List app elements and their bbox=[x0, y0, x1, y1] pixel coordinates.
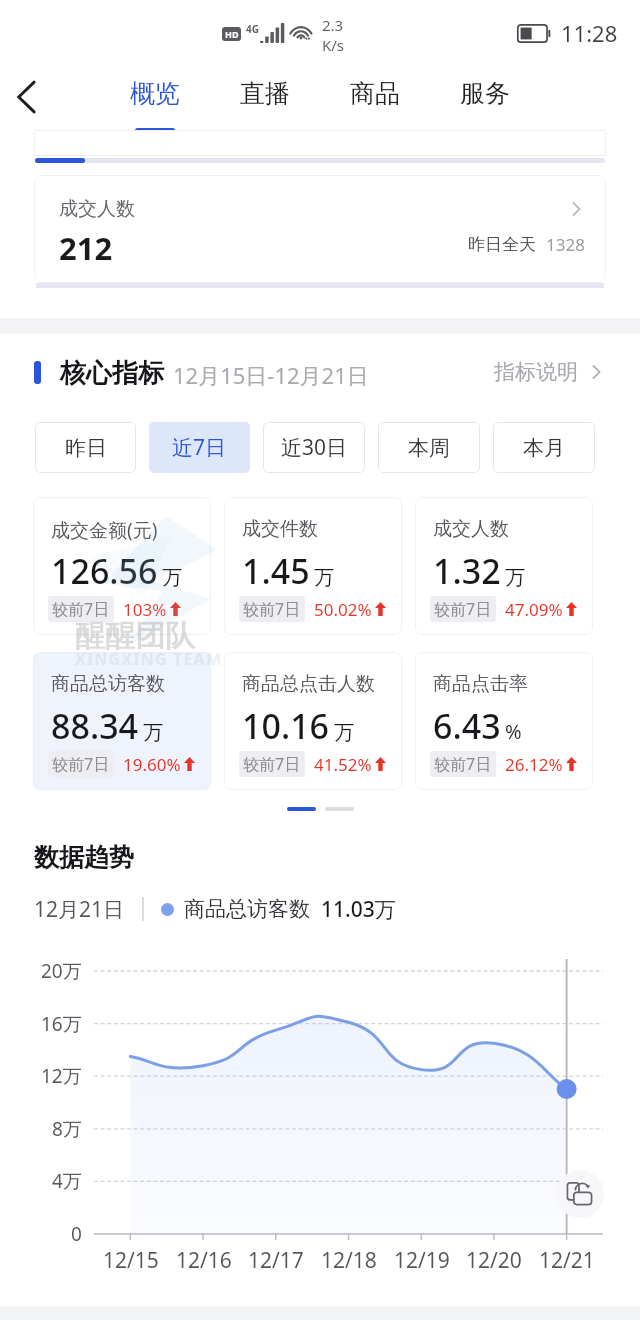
button[interactable]: Back bbox=[5, 73, 53, 121]
staticText: 10.16 bbox=[242, 703, 330, 749]
staticText: 较前7日 bbox=[434, 598, 492, 620]
button[interactable]: Rotate chart bbox=[556, 1170, 604, 1218]
button[interactable]: 近30日 bbox=[263, 422, 365, 473]
staticText: % bbox=[505, 718, 522, 745]
staticText: 万 bbox=[334, 720, 354, 745]
button[interactable]: 近7日 bbox=[149, 422, 250, 473]
staticText: 4万 bbox=[52, 1168, 82, 1194]
staticText: 直播 bbox=[240, 78, 290, 109]
staticText: 近30日 bbox=[281, 433, 348, 462]
button[interactable]: 商品总点击人数 bbox=[224, 652, 402, 790]
staticText: K/s bbox=[322, 35, 345, 55]
staticText: 指标说明 bbox=[494, 359, 578, 385]
staticText: 12/17 bbox=[248, 1246, 304, 1275]
staticText: 较前7日 bbox=[434, 753, 492, 775]
staticText: 本月 bbox=[523, 435, 565, 461]
staticText: 19.60% bbox=[123, 753, 181, 776]
staticText: 本周 bbox=[408, 435, 450, 461]
staticText: 12月21日 bbox=[34, 895, 125, 924]
button[interactable]: 成交金额(元) bbox=[33, 497, 211, 635]
staticText: 26.12% bbox=[505, 753, 563, 776]
staticText: 12/21 bbox=[539, 1246, 595, 1275]
button[interactable]: 直播 bbox=[227, 66, 303, 134]
staticText: 12/20 bbox=[466, 1246, 522, 1275]
staticText: 较前7日 bbox=[52, 598, 110, 620]
staticText: 12/18 bbox=[321, 1246, 377, 1275]
staticText: 11:28 bbox=[561, 18, 618, 48]
staticText: 8万 bbox=[52, 1116, 82, 1142]
staticText: 万 bbox=[505, 565, 525, 590]
button[interactable]: 昨日 bbox=[35, 422, 136, 473]
button[interactable]: 本月 bbox=[493, 422, 595, 473]
staticText: 12月15日-12月21日 bbox=[173, 360, 369, 390]
button[interactable]: 商品点击率 bbox=[415, 652, 593, 790]
staticText: 1328 bbox=[546, 233, 585, 256]
staticText: HD bbox=[225, 28, 239, 40]
staticText: 成交金额(元) bbox=[51, 517, 158, 543]
staticText: 成交人数 bbox=[59, 197, 135, 221]
staticText: 较前7日 bbox=[243, 753, 301, 775]
button[interactable]: 成交人数 bbox=[34, 175, 606, 283]
staticText: 126.56 bbox=[51, 548, 158, 594]
staticText: 88.34 bbox=[51, 703, 139, 749]
staticText: 较前7日 bbox=[52, 753, 110, 775]
staticText: 16万 bbox=[41, 1011, 82, 1037]
staticText: 昨日 bbox=[65, 435, 107, 461]
button[interactable]: 服务 bbox=[447, 66, 523, 134]
staticText: 服务 bbox=[460, 78, 510, 109]
staticText: 核心指标 bbox=[60, 357, 164, 390]
staticText: 12/16 bbox=[176, 1246, 232, 1275]
staticText: 50.02% bbox=[314, 598, 372, 621]
button[interactable]: 概览 bbox=[117, 66, 193, 134]
staticText: 20万 bbox=[41, 958, 82, 984]
staticText: 数据趋势 bbox=[34, 842, 134, 873]
staticText: 近7日 bbox=[172, 433, 227, 462]
staticText: XINGXING TEAM bbox=[75, 648, 223, 670]
staticText: 醒醒团队 bbox=[75, 617, 195, 655]
staticText: 12/15 bbox=[103, 1246, 159, 1275]
staticText: 昨日全天 bbox=[468, 234, 536, 255]
button[interactable]: 指标说明 bbox=[494, 359, 605, 385]
staticText: 2.3 bbox=[322, 15, 344, 35]
staticText: 11.03万 bbox=[321, 895, 396, 924]
staticText: 万 bbox=[314, 565, 334, 590]
staticText: 12/19 bbox=[394, 1246, 450, 1275]
staticText: 概览 bbox=[130, 78, 180, 109]
staticText: 万 bbox=[162, 565, 182, 590]
button[interactable]: 商品 bbox=[337, 66, 413, 134]
staticText: 6.43 bbox=[433, 703, 501, 749]
staticText: 万 bbox=[143, 720, 163, 745]
staticText: 成交人数 bbox=[433, 517, 509, 541]
staticText: 商品总访客数 bbox=[51, 672, 165, 696]
staticText: 47.09% bbox=[505, 598, 563, 621]
staticText: 0 bbox=[71, 1221, 82, 1247]
staticText: 商品总访客数 bbox=[184, 896, 310, 922]
button[interactable]: 成交人数 bbox=[415, 497, 593, 635]
staticText: 41.52% bbox=[314, 753, 372, 776]
staticText: 1.45 bbox=[242, 548, 310, 594]
button[interactable]: 成交件数 bbox=[224, 497, 402, 635]
staticText: 较前7日 bbox=[243, 598, 301, 620]
staticText: 商品点击率 bbox=[433, 672, 528, 696]
staticText: 成交件数 bbox=[242, 517, 318, 541]
staticText: 商品 bbox=[350, 78, 400, 109]
staticText: 1.32 bbox=[433, 548, 501, 594]
staticText: 商品总点击人数 bbox=[242, 672, 375, 696]
staticText: 4G bbox=[246, 22, 259, 36]
staticText: 212 bbox=[59, 227, 113, 269]
button[interactable]: 本周 bbox=[378, 422, 480, 473]
staticText: 103% bbox=[123, 598, 167, 621]
staticText: 12万 bbox=[41, 1063, 82, 1089]
button[interactable]: 商品总访客数 bbox=[33, 652, 211, 790]
